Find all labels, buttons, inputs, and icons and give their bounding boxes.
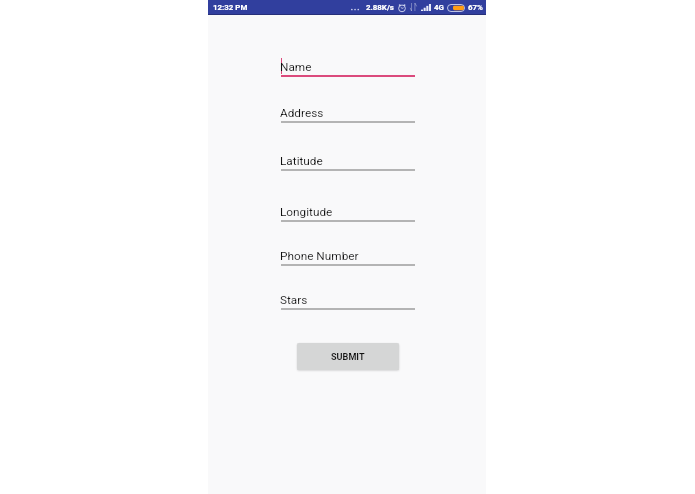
staticText: Stars bbox=[280, 293, 308, 307]
staticText: Phone Number bbox=[280, 249, 359, 263]
button[interactable]: Longitude bbox=[281, 197, 415, 223]
button[interactable]: Address bbox=[281, 98, 415, 124]
staticText: Latitude bbox=[280, 154, 323, 168]
staticText: Address bbox=[280, 106, 324, 120]
staticText: 12:32 PM bbox=[213, 3, 248, 12]
button[interactable]: Name bbox=[281, 52, 415, 78]
button[interactable]: Latitude bbox=[281, 146, 415, 172]
staticText: Name bbox=[280, 60, 312, 74]
staticText: 2.88K/s bbox=[366, 3, 394, 12]
button[interactable]: SUBMIT bbox=[297, 343, 399, 370]
button[interactable]: Stars bbox=[281, 285, 415, 311]
staticText: 4G bbox=[434, 3, 444, 12]
staticText: Longitude bbox=[280, 205, 333, 219]
staticText: 67% bbox=[468, 3, 483, 12]
button[interactable]: Phone Number bbox=[281, 241, 415, 267]
staticText: SUBMIT bbox=[331, 352, 365, 363]
